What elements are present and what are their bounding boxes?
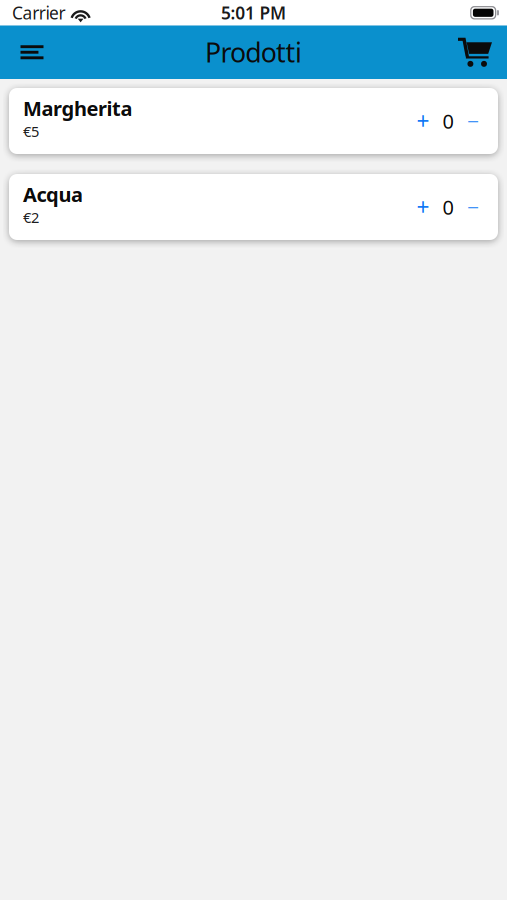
staticText: Acqua [23, 181, 83, 208]
button[interactable]: − [460, 187, 486, 227]
button[interactable]: Shopping cart [451, 28, 499, 76]
staticText: Margherita [23, 95, 132, 122]
staticText: 0 [442, 108, 453, 134]
staticText: − [467, 107, 479, 135]
button[interactable]: + [410, 187, 436, 227]
staticText: + [416, 106, 429, 136]
staticText: Prodotti [205, 34, 302, 70]
staticText: − [467, 193, 479, 221]
button[interactable]: Menu [8, 28, 56, 76]
staticText: + [416, 192, 429, 222]
staticText: 0 [442, 194, 453, 220]
staticText: 5:01 PM [221, 1, 286, 24]
button[interactable]: − [460, 101, 486, 141]
button[interactable]: + [410, 101, 436, 141]
staticText: €2 [23, 207, 39, 227]
staticText: €5 [23, 121, 39, 141]
staticText: Carrier [12, 1, 66, 24]
